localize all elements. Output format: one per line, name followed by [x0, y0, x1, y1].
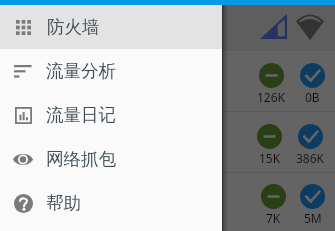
button[interactable]: 网络抓包 [0, 137, 222, 181]
staticText: 帮助 [46, 192, 81, 214]
button[interactable]: Mobile data [260, 14, 287, 39]
staticText: 15K [259, 150, 281, 166]
button[interactable]: 流量日记 [0, 93, 222, 137]
button[interactable]: 帮助 [0, 181, 222, 225]
staticText: 流量分析 [46, 60, 116, 82]
staticText: 7K [266, 210, 281, 226]
staticText: 防火墙 [47, 16, 100, 38]
button[interactable]: 流量分析 [0, 49, 222, 93]
staticText: 流量日记 [46, 104, 116, 126]
button[interactable]: Wi-Fi [296, 14, 324, 40]
button[interactable]: 防火墙 [0, 0, 222, 49]
staticText: 5M [304, 210, 322, 226]
button[interactable]: 7K [0, 173, 335, 231]
staticText: 386K [296, 150, 325, 166]
staticText: 0B [305, 89, 320, 105]
button[interactable]: 126K [0, 51, 335, 111]
staticText: 网络抓包 [46, 148, 116, 170]
staticText: 126K [257, 89, 286, 105]
button[interactable]: 15K [0, 112, 335, 172]
